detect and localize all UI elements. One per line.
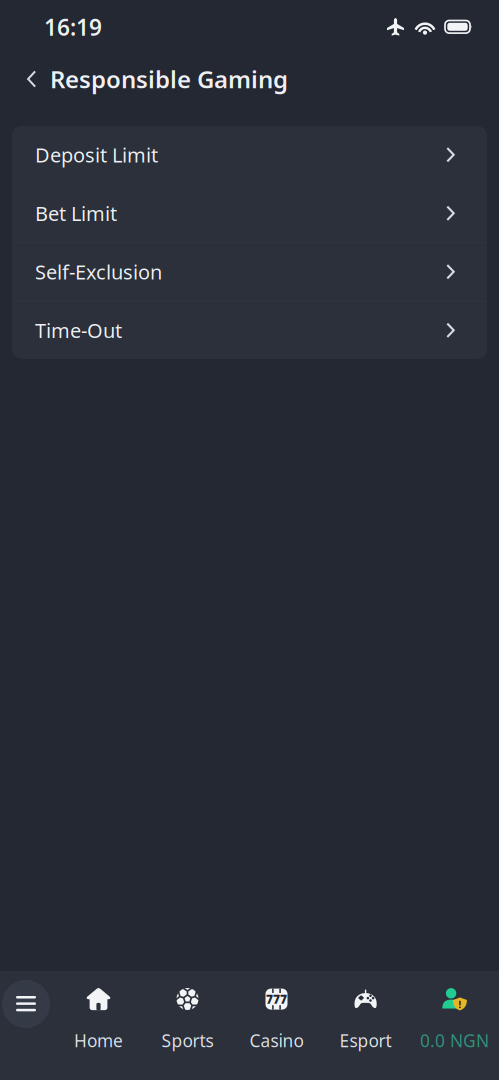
- button[interactable]: Esport: [321, 985, 410, 1052]
- button[interactable]: Time-Out: [12, 301, 487, 359]
- button[interactable]: Home: [54, 985, 143, 1052]
- staticText: 777: [266, 991, 287, 1007]
- staticText: Time-Out: [35, 317, 122, 344]
- staticText: 16:19: [44, 12, 102, 42]
- staticText: Casino: [249, 1029, 303, 1052]
- staticText: Bet Limit: [35, 200, 117, 227]
- staticText: Sports: [161, 1029, 213, 1052]
- button[interactable]: Back: [14, 59, 50, 99]
- button[interactable]: 0.0 NGN: [410, 985, 499, 1052]
- staticText: Home: [74, 1029, 123, 1052]
- staticText: Self-Exclusion: [35, 258, 162, 285]
- staticText: 0.0 NGN: [420, 1029, 489, 1052]
- button[interactable]: Deposit Limit: [12, 126, 487, 183]
- staticText: Deposit Limit: [35, 141, 158, 168]
- button[interactable]: Bet Limit: [12, 184, 487, 242]
- button[interactable]: Sports: [143, 985, 232, 1052]
- button[interactable]: Menu: [0, 985, 52, 1052]
- staticText: Responsible Gaming: [50, 63, 288, 95]
- button[interactable]: 777: [232, 985, 321, 1052]
- staticText: Esport: [339, 1029, 391, 1052]
- button[interactable]: Self-Exclusion: [12, 243, 487, 300]
